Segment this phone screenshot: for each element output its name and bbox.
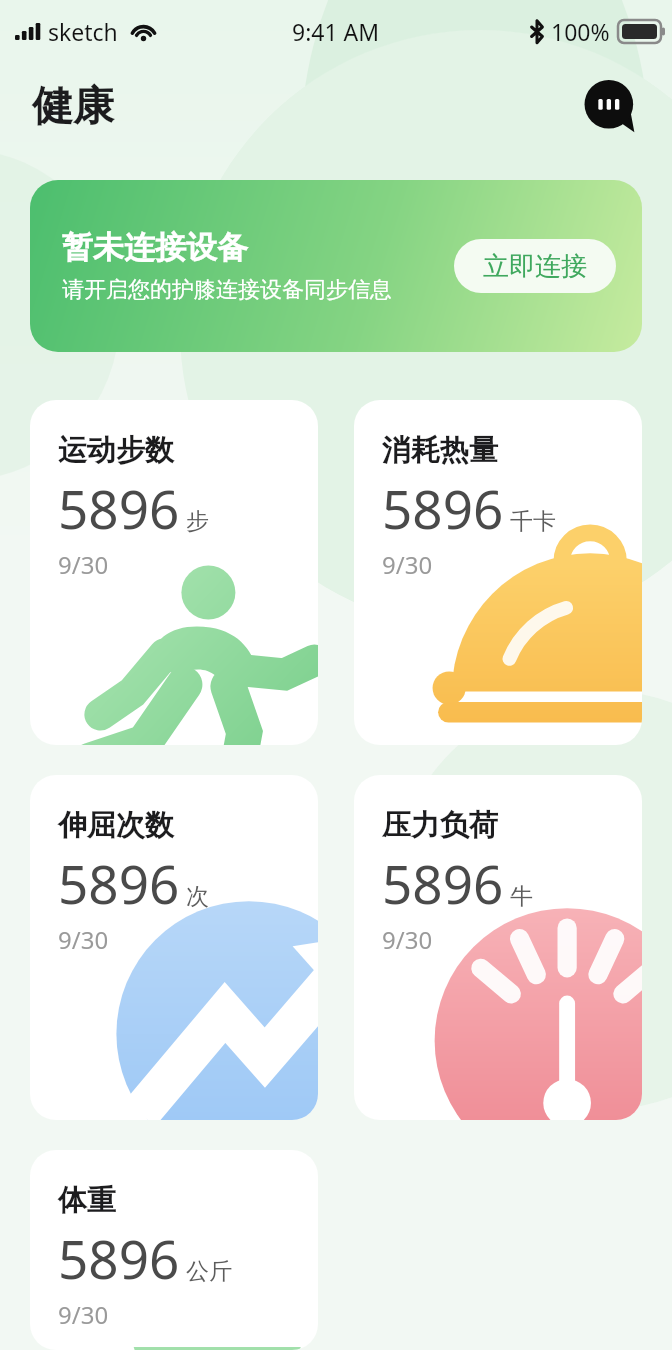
staticText: 5896 (58, 472, 180, 544)
staticText: 9/30 (382, 548, 433, 581)
button[interactable]: 运动步数 (30, 400, 318, 745)
staticText: 千卡 (510, 507, 556, 536)
staticText: sketch (48, 16, 118, 47)
button[interactable]: 消耗热量 (354, 400, 642, 745)
staticText: 次 (186, 882, 209, 911)
staticText: 100% (551, 16, 610, 47)
staticText: 9/30 (58, 548, 109, 581)
staticText: 5896 (382, 847, 504, 919)
button[interactable]: 伸屈次数 (30, 775, 318, 1120)
staticText: 请开启您的护膝连接设备同步信息 (62, 276, 392, 304)
staticText: 伸屈次数 (58, 807, 174, 844)
button[interactable]: Customer service chat (584, 80, 638, 134)
button[interactable]: 立即连接 (454, 239, 616, 293)
staticText: 立即连接 (483, 250, 587, 283)
staticText: 体重 (58, 1182, 116, 1219)
staticText: 公斤 (186, 1257, 232, 1286)
staticText: 压力负荷 (382, 807, 498, 844)
staticText: 9/30 (58, 1298, 109, 1331)
button[interactable]: 暂未连接设备 (30, 180, 642, 352)
button[interactable]: 压力负荷 (354, 775, 642, 1120)
staticText: 健康 (32, 81, 114, 133)
staticText: 5896 (58, 847, 180, 919)
staticText: 9/30 (382, 923, 433, 956)
staticText: 暂未连接设备 (62, 228, 248, 267)
staticText: 5896 (382, 472, 504, 544)
staticText: 9:41 AM (292, 16, 380, 47)
staticText: 消耗热量 (382, 432, 498, 469)
staticText: 步 (186, 507, 209, 536)
staticText: 运动步数 (58, 432, 174, 469)
button[interactable]: 体重 (30, 1150, 318, 1350)
staticText: 牛 (510, 882, 533, 911)
staticText: 9/30 (58, 923, 109, 956)
staticText: 5896 (58, 1222, 180, 1294)
